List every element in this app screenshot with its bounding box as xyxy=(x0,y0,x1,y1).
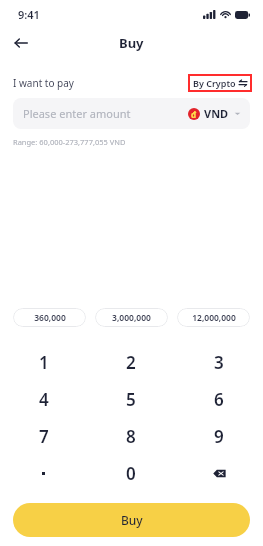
button[interactable]: 5 xyxy=(87,381,175,418)
staticText: 4 xyxy=(39,388,49,411)
staticText: đ xyxy=(191,109,197,120)
button[interactable]: 9 xyxy=(175,418,263,455)
button[interactable]: 7 xyxy=(0,418,87,455)
staticText: Range: 60,000-273,777,055 VND xyxy=(13,137,126,147)
staticText: 7 xyxy=(39,425,49,448)
staticText: VND xyxy=(204,106,229,121)
staticText: 9 xyxy=(214,425,224,448)
staticText: By Crypto xyxy=(193,77,236,89)
staticText: 9:41 xyxy=(18,7,40,22)
button[interactable]: Buy xyxy=(13,503,250,537)
button[interactable]: 12,000,000 xyxy=(177,308,250,327)
staticText: 8 xyxy=(126,425,136,448)
staticText: Please enter amount xyxy=(23,106,131,121)
staticText: I want to pay xyxy=(13,76,74,90)
staticText: Buy xyxy=(121,512,143,528)
staticText: 3,000,000 xyxy=(112,312,151,324)
staticText: 5 xyxy=(126,388,136,411)
staticText: 360,000 xyxy=(34,312,66,324)
button[interactable]: 1 xyxy=(0,344,87,381)
button[interactable]: Backspace xyxy=(175,455,263,492)
staticText: Buy xyxy=(119,34,144,52)
button[interactable]: Please enter amount xyxy=(13,98,250,129)
staticText: 12,000,000 xyxy=(192,312,236,324)
button[interactable] xyxy=(0,455,87,492)
button[interactable]: 360,000 xyxy=(13,308,86,327)
button[interactable]: 4 xyxy=(0,381,87,418)
staticText: 0 xyxy=(126,462,136,485)
button[interactable]: 0 xyxy=(87,455,175,492)
button[interactable]: 6 xyxy=(175,381,263,418)
button[interactable]: 2 xyxy=(87,344,175,381)
button[interactable]: Back xyxy=(8,30,34,56)
staticText: 1 xyxy=(39,351,49,374)
button[interactable]: 3,000,000 xyxy=(95,308,168,327)
button[interactable]: đ xyxy=(188,106,241,121)
staticText: 6 xyxy=(214,388,224,411)
button[interactable]: By Crypto xyxy=(193,77,247,89)
staticText: 3 xyxy=(214,351,224,374)
button[interactable]: 8 xyxy=(87,418,175,455)
button[interactable]: 3 xyxy=(175,344,263,381)
staticText: 2 xyxy=(126,351,136,374)
